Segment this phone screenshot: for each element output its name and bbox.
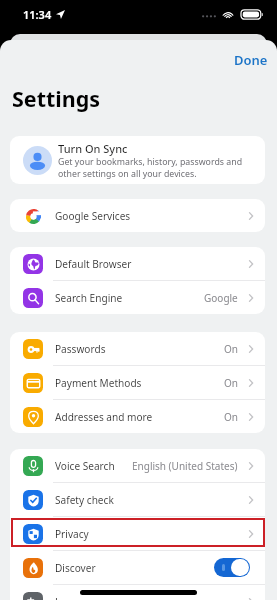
staticText: Voice Search	[55, 459, 115, 473]
staticText: Default Browser	[55, 257, 132, 271]
staticText: On	[224, 410, 238, 424]
staticText: On	[224, 376, 238, 390]
button[interactable]: Turn On Sync	[10, 136, 265, 184]
staticText: Addresses and more	[55, 410, 153, 424]
staticText: Google	[204, 291, 238, 305]
staticText: 11:34	[23, 7, 52, 22]
button[interactable]: Done	[220, 48, 277, 72]
staticText: Turn On Sync	[58, 141, 128, 156]
button[interactable]: Discover	[10, 551, 265, 584]
staticText: Done	[234, 51, 268, 69]
staticText: Safety check	[55, 493, 114, 507]
button[interactable]: Default Browser	[10, 247, 265, 280]
staticText: Discover	[55, 561, 96, 575]
staticText: English (United States)	[132, 459, 238, 473]
staticText: On	[224, 342, 238, 356]
staticText: Settings	[12, 84, 101, 113]
button[interactable]: Privacy	[10, 517, 265, 550]
staticText: Payment Methods	[55, 376, 142, 390]
staticText: Search Engine	[55, 291, 123, 305]
button[interactable]: Discover toggle	[214, 558, 250, 577]
button[interactable]: Google Services	[10, 199, 265, 232]
staticText: Google Services	[55, 209, 131, 223]
staticText: Languages	[55, 595, 108, 600]
staticText: Privacy	[55, 527, 89, 541]
button[interactable]: Passwords	[10, 332, 265, 365]
button[interactable]: Safety check	[10, 483, 265, 516]
button[interactable]: Search Engine	[10, 281, 265, 314]
button[interactable]: Payment Methods	[10, 366, 265, 399]
staticText: Passwords	[55, 342, 106, 356]
staticText: Get your bookmarks, history, passwords a…	[58, 156, 250, 180]
button[interactable]: Voice Search	[10, 449, 265, 482]
button[interactable]: Languages	[10, 585, 265, 600]
button[interactable]: Addresses and more	[10, 400, 265, 433]
